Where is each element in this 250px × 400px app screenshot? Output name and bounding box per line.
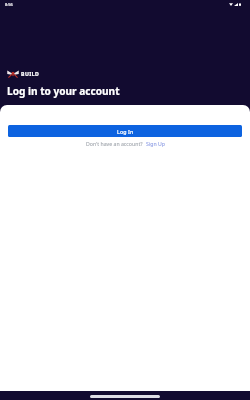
staticText: Sign Up	[146, 140, 165, 147]
other: Mobile signal	[234, 3, 238, 6]
staticText: Don't have an account?	[86, 140, 143, 147]
staticText: Log in to your account	[7, 84, 120, 98]
other: Wi-Fi	[229, 3, 233, 6]
button[interactable]: Sign Up	[146, 140, 165, 147]
button[interactable]: Log In	[8, 125, 242, 137]
staticText: 8:56	[5, 2, 13, 7]
staticText: Log In	[117, 128, 134, 135]
button[interactable]: BUILD logo	[7, 70, 40, 78]
other: BUILD logo	[7, 70, 19, 78]
staticText: BUILD	[21, 70, 40, 77]
other: Battery	[239, 3, 241, 6]
